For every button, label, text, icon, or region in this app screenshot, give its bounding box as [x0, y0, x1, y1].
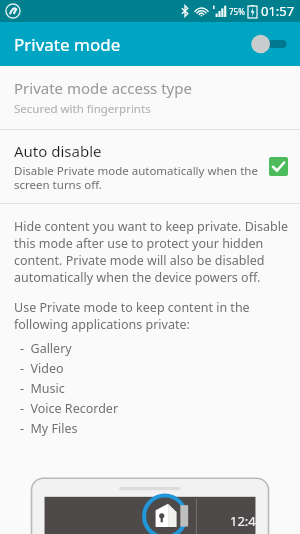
staticText: Private mode access type	[14, 78, 192, 98]
staticText: - Gallery	[20, 340, 72, 357]
staticText: Auto disable	[14, 141, 102, 161]
staticText: Use Private mode to keep content in the …	[14, 299, 288, 333]
staticText: 12:45	[230, 512, 264, 530]
staticText: - Music	[20, 380, 65, 397]
staticText: Hide content you want to keep private. D…	[14, 218, 288, 286]
staticText: - Video	[20, 360, 64, 377]
staticText: - Voice Recorder	[20, 400, 119, 417]
button[interactable]: Private mode access type	[0, 66, 300, 129]
staticText: Secured with fingerprints	[14, 101, 151, 117]
staticText: Private mode	[14, 33, 121, 56]
staticText: 01:57	[261, 2, 295, 20]
staticText: 75%	[229, 6, 245, 17]
staticText: - My Files	[20, 420, 78, 437]
button[interactable]: Toggle Private mode	[248, 31, 290, 57]
button[interactable]: Auto disable	[0, 130, 300, 203]
other: Auto disable enabled	[269, 157, 288, 176]
staticText: Disable Private mode automatically when …	[14, 163, 261, 192]
